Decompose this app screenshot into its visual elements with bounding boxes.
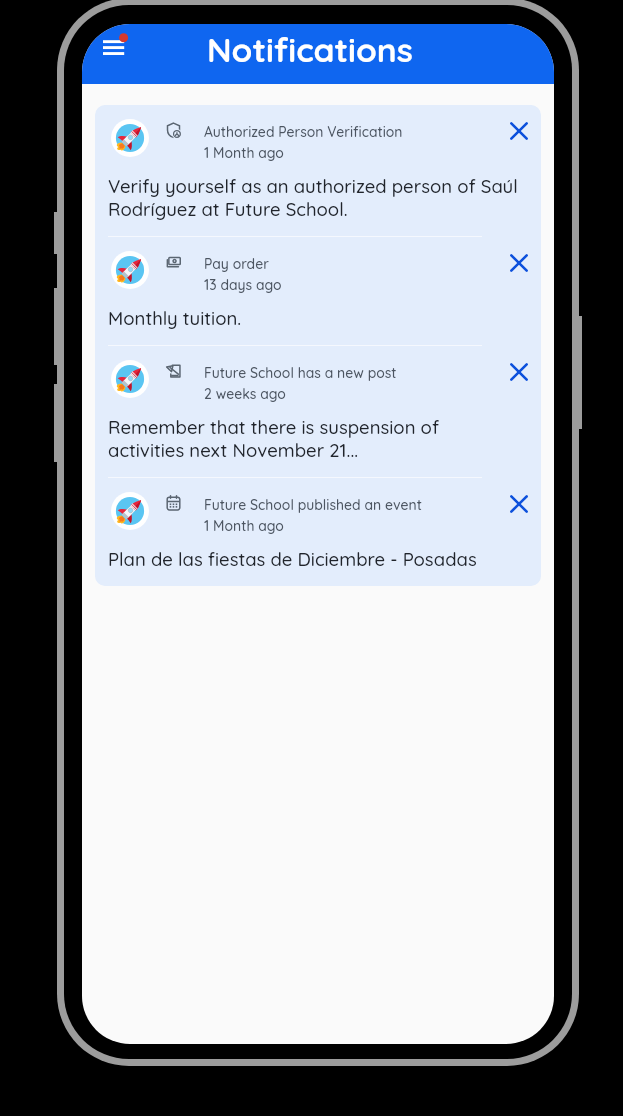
button[interactable]: Dismiss notification bbox=[498, 351, 540, 393]
staticText: Notifications bbox=[207, 28, 413, 70]
button[interactable]: Dismiss notification bbox=[498, 483, 540, 525]
staticText: Pay order bbox=[204, 252, 269, 273]
staticText: 2 weeks ago bbox=[204, 382, 286, 403]
staticText: Verify yourself as an authorized person … bbox=[108, 175, 518, 221]
staticText: 13 days ago bbox=[204, 273, 282, 294]
staticText: 1 Month ago bbox=[204, 514, 284, 535]
staticText: Plan de las fiestas de Diciembre - Posad… bbox=[108, 548, 477, 571]
staticText: Future School has a new post bbox=[204, 361, 397, 382]
staticText: Future School published an event bbox=[204, 493, 422, 514]
staticText: 1 Month ago bbox=[204, 141, 284, 162]
button[interactable]: Future School published an event bbox=[95, 478, 541, 586]
button[interactable]: Dismiss notification bbox=[498, 242, 540, 284]
button[interactable]: Pay order bbox=[95, 237, 541, 345]
button[interactable]: Open navigation menu bbox=[99, 35, 131, 59]
button[interactable]: Future School has a new post bbox=[95, 346, 541, 477]
button[interactable]: Dismiss notification bbox=[498, 110, 540, 152]
staticText: Authorized Person Verification bbox=[204, 120, 403, 141]
staticText: Monthly tuition. bbox=[108, 307, 242, 330]
staticText: Remember that there is suspension of act… bbox=[108, 416, 440, 462]
button[interactable]: Authorized Person Verification bbox=[95, 105, 541, 236]
